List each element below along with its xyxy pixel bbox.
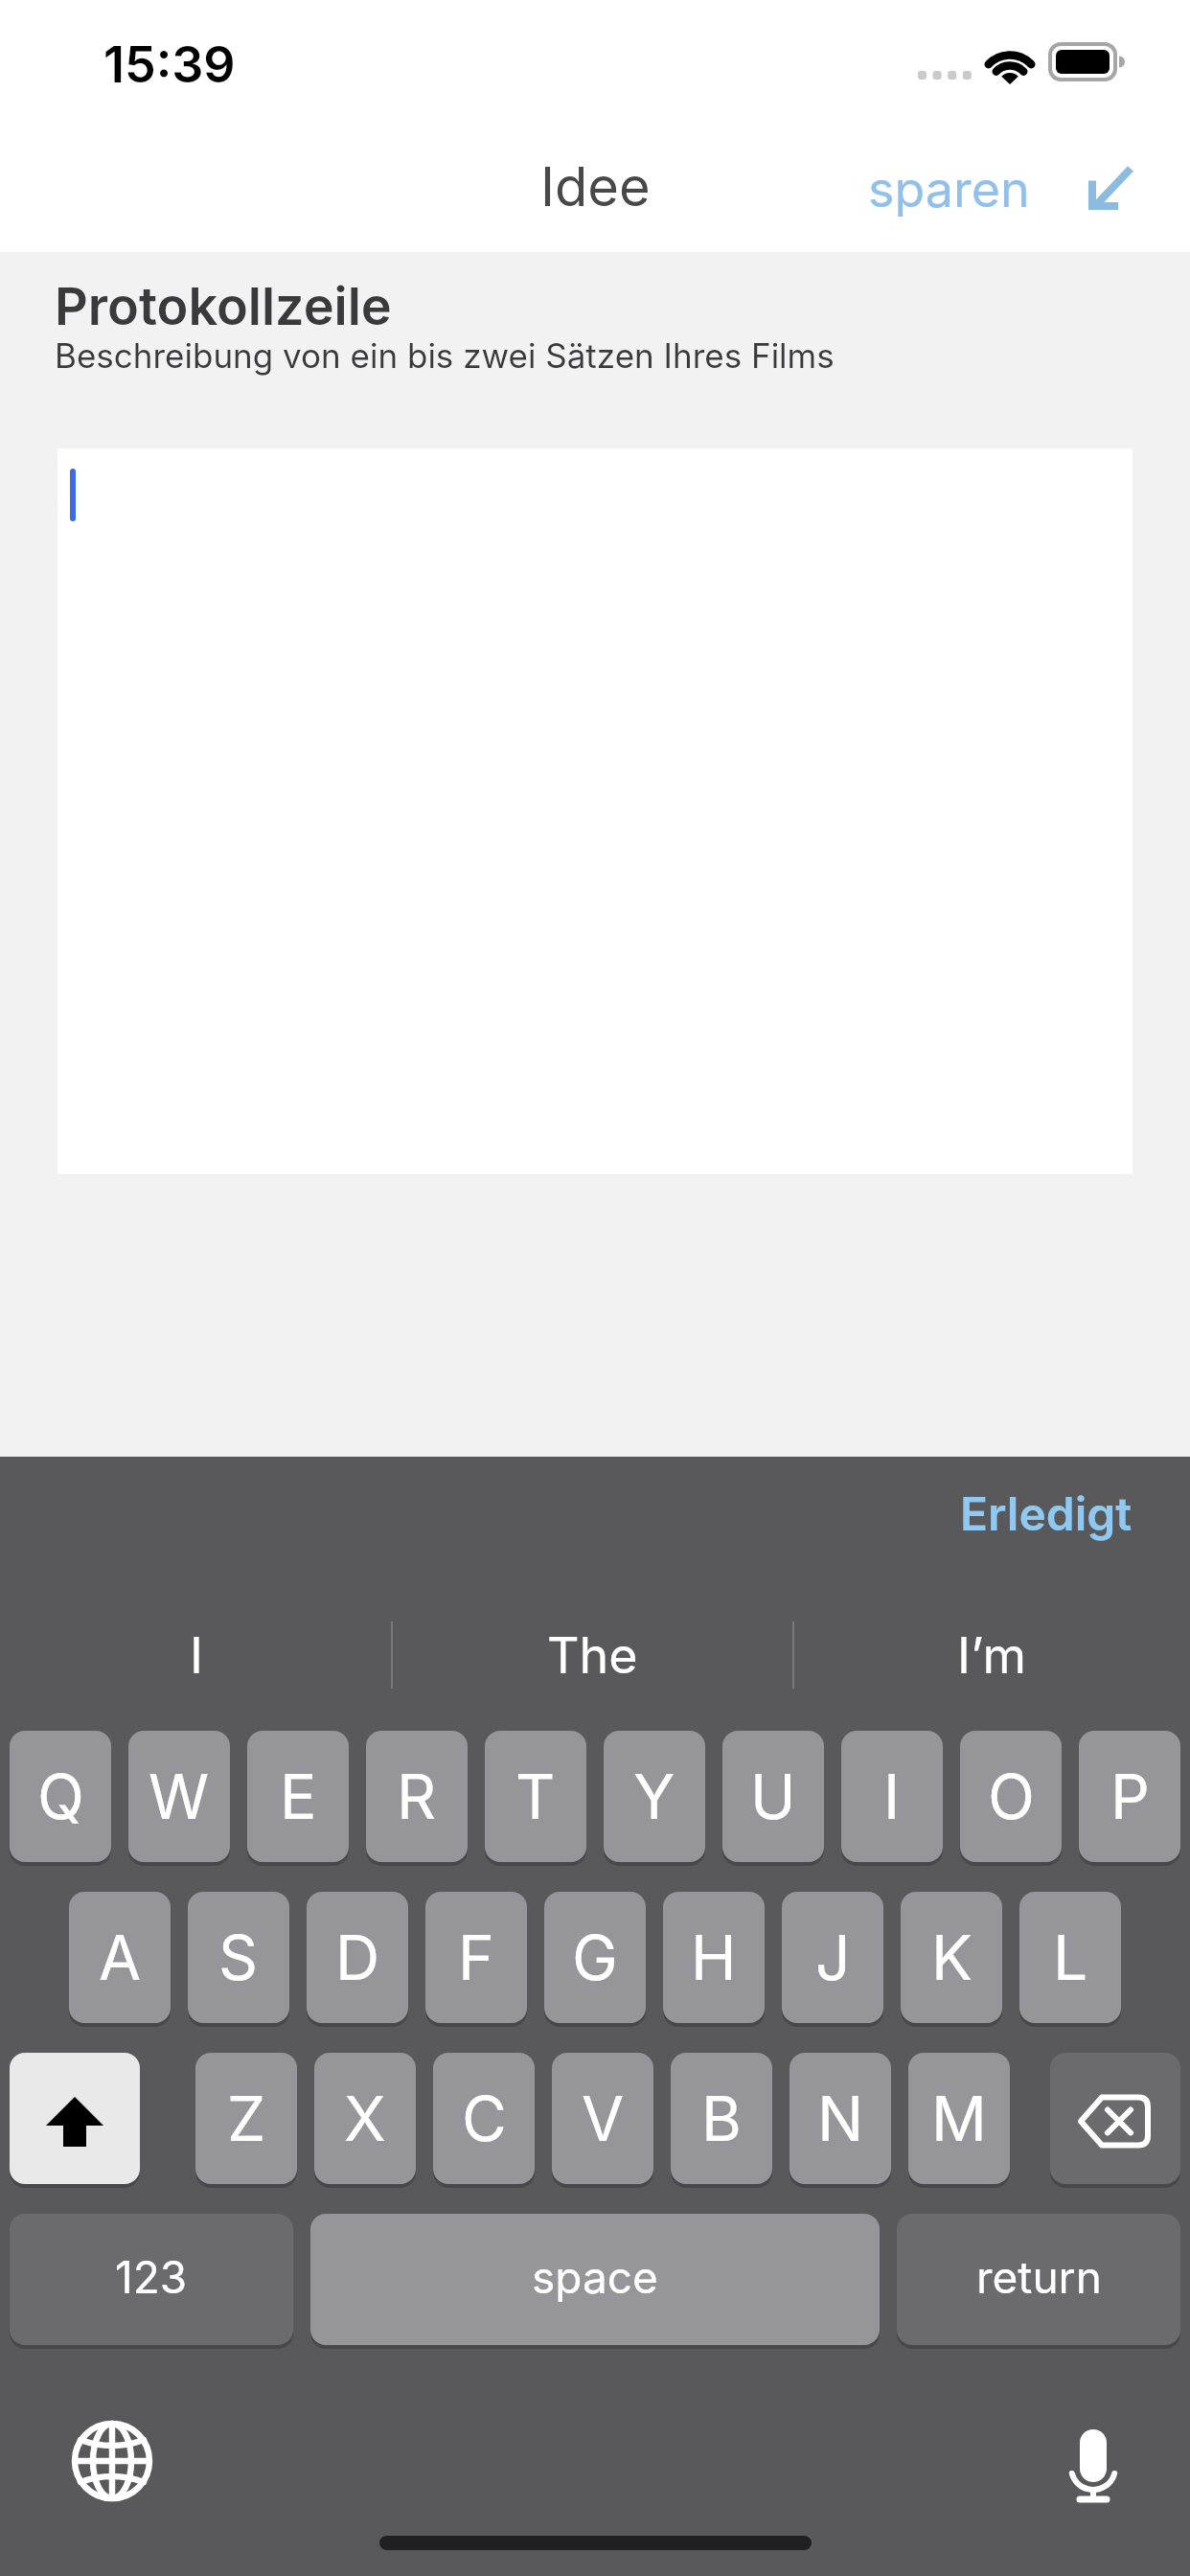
staticText: space <box>532 2250 658 2304</box>
button[interactable]: 123 <box>10 2214 293 2345</box>
button[interactable]: K <box>901 1892 1002 2023</box>
button[interactable]: F <box>425 1892 527 2023</box>
staticText: A <box>99 1920 142 1994</box>
button[interactable]: Q <box>10 1731 111 1862</box>
staticText: C <box>462 2081 507 2155</box>
staticText: 15:39 <box>103 34 236 95</box>
button[interactable]: Z <box>195 2053 297 2184</box>
button[interactable]: U <box>722 1731 824 1862</box>
staticText: P <box>1110 1759 1150 1833</box>
button[interactable]: T <box>485 1731 586 1862</box>
button[interactable]: space <box>310 2214 880 2345</box>
staticText: R <box>397 1759 437 1833</box>
staticText: Idee <box>540 154 651 219</box>
staticText: Y <box>633 1759 675 1833</box>
button[interactable]: Y <box>604 1731 705 1862</box>
staticText: F <box>458 1920 494 1994</box>
button[interactable]: D <box>307 1892 408 2023</box>
staticText: I <box>190 1625 203 1686</box>
staticText: H <box>691 1920 737 1994</box>
staticText: Beschreibung von ein bis zwei Sätzen Ihr… <box>55 335 835 376</box>
staticText: The <box>547 1625 638 1686</box>
staticText: T <box>515 1759 556 1833</box>
staticText: W <box>149 1759 210 1833</box>
staticText: Z <box>227 2081 266 2155</box>
staticText: B <box>701 2081 742 2155</box>
staticText: X <box>344 2081 386 2155</box>
button[interactable] <box>10 2053 140 2184</box>
button[interactable] <box>1073 153 1150 220</box>
staticText: I <box>883 1759 901 1833</box>
staticText: S <box>218 1920 259 1994</box>
button[interactable] <box>55 2403 170 2518</box>
button[interactable]: I <box>841 1731 943 1862</box>
button[interactable]: Erledigt <box>883 1480 1133 1547</box>
button[interactable] <box>57 448 1133 1174</box>
staticText: J <box>815 1920 851 1994</box>
button[interactable]: J <box>782 1892 883 2023</box>
staticText: Q <box>37 1759 84 1833</box>
button[interactable]: C <box>433 2053 535 2184</box>
button[interactable]: return <box>897 2214 1180 2345</box>
staticText: O <box>988 1759 1035 1833</box>
staticText: Erledigt <box>960 1485 1133 1541</box>
button[interactable]: H <box>663 1892 765 2023</box>
staticText: return <box>976 2250 1102 2304</box>
staticText: M <box>931 2081 987 2155</box>
button[interactable]: O <box>960 1731 1062 1862</box>
button[interactable]: M <box>908 2053 1010 2184</box>
button[interactable]: E <box>247 1731 349 1862</box>
button[interactable]: L <box>1019 1892 1121 2023</box>
button[interactable]: G <box>544 1892 646 2023</box>
button[interactable]: I’m <box>793 1620 1190 1690</box>
staticText: E <box>280 1759 317 1833</box>
staticText: V <box>582 2081 625 2155</box>
staticText: Protokollzeile <box>55 275 392 337</box>
button[interactable]: The <box>392 1620 793 1690</box>
staticText: 123 <box>115 2250 188 2304</box>
button[interactable]: V <box>552 2053 653 2184</box>
button[interactable] <box>1050 2053 1180 2184</box>
button[interactable]: P <box>1079 1731 1180 1862</box>
staticText: U <box>750 1759 796 1833</box>
staticText: G <box>572 1920 618 1994</box>
staticText: L <box>1053 1920 1088 1994</box>
staticText: K <box>931 1920 973 1994</box>
button[interactable]: N <box>790 2053 891 2184</box>
button[interactable]: A <box>69 1892 171 2023</box>
staticText: I’m <box>957 1625 1026 1686</box>
button[interactable]: B <box>671 2053 772 2184</box>
button[interactable]: X <box>314 2053 416 2184</box>
staticText: D <box>335 1920 380 1994</box>
button[interactable]: W <box>128 1731 230 1862</box>
staticText: N <box>817 2081 864 2155</box>
button[interactable] <box>1049 2410 1140 2516</box>
staticText: sparen <box>868 159 1030 219</box>
button[interactable]: I <box>0 1620 392 1690</box>
button[interactable]: R <box>366 1731 468 1862</box>
button[interactable]: sparen <box>862 155 1035 222</box>
button[interactable]: S <box>188 1892 289 2023</box>
